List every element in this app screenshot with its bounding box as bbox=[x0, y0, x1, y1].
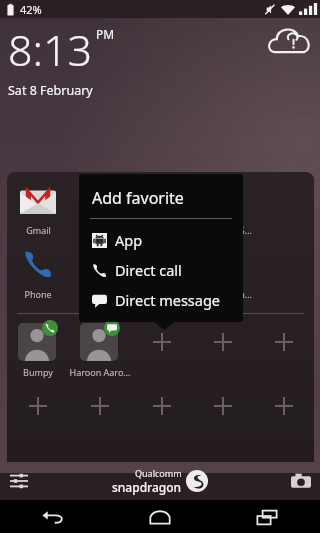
button[interactable]: App bbox=[79, 225, 243, 255]
button[interactable] bbox=[192, 384, 253, 448]
staticText: 8:13 bbox=[8, 20, 93, 79]
staticText: Add favorite bbox=[92, 187, 184, 209]
button[interactable] bbox=[131, 242, 192, 306]
button[interactable] bbox=[131, 384, 192, 448]
button[interactable]: Phone bbox=[7, 242, 69, 306]
staticText: PM bbox=[96, 26, 115, 42]
button[interactable] bbox=[253, 384, 314, 448]
button[interactable]: Direct message bbox=[79, 285, 243, 315]
staticText: Gmail bbox=[26, 224, 51, 236]
button[interactable]: Haroon Aaron... bbox=[69, 320, 131, 384]
button[interactable] bbox=[253, 320, 314, 384]
button[interactable]: Mrs. Pareen... bbox=[192, 242, 253, 306]
staticText: Bumpy bbox=[23, 366, 53, 378]
staticText: Phone bbox=[24, 288, 52, 300]
staticText: Direct call bbox=[115, 260, 182, 280]
button[interactable] bbox=[7, 384, 69, 448]
staticText: 923125148553 bbox=[192, 224, 253, 236]
staticText: Qualcomm bbox=[135, 467, 182, 479]
button[interactable]: Settings bbox=[6, 468, 32, 494]
button[interactable] bbox=[131, 320, 192, 384]
button[interactable] bbox=[69, 178, 131, 242]
button[interactable]: Weather unavailable bbox=[268, 24, 312, 60]
button[interactable]: Back bbox=[0, 500, 106, 533]
button[interactable]: Recents bbox=[213, 500, 320, 533]
button[interactable]: Gmail bbox=[7, 178, 69, 242]
button[interactable]: 923125148553 bbox=[192, 178, 253, 242]
button[interactable]: Direct call bbox=[79, 255, 243, 285]
staticText: Direct message bbox=[115, 290, 221, 310]
button[interactable] bbox=[192, 320, 253, 384]
button[interactable] bbox=[69, 242, 131, 306]
button[interactable] bbox=[69, 384, 131, 448]
button[interactable]: Camera bbox=[288, 468, 314, 494]
staticText: App bbox=[115, 230, 143, 250]
staticText: snapdragon bbox=[112, 479, 182, 495]
staticText: Sat 8 February bbox=[8, 82, 93, 99]
button[interactable]: Home bbox=[106, 500, 213, 533]
staticText: Mrs. Pareen... bbox=[194, 288, 252, 300]
button[interactable] bbox=[131, 178, 192, 242]
button[interactable]: Bumpy bbox=[7, 320, 69, 384]
staticText: 42% bbox=[20, 2, 42, 17]
staticText: Haroon Aaron... bbox=[69, 366, 131, 378]
